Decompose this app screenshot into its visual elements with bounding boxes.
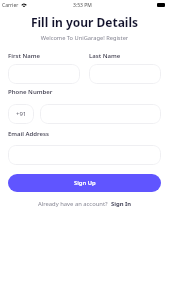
staticText: First Name: [8, 52, 41, 60]
staticText: Last Name: [89, 52, 121, 60]
button[interactable]: Sign In: [111, 200, 132, 208]
button[interactable]: [89, 64, 161, 84]
other: Wi-Fi signal: [21, 2, 27, 7]
staticText: Phone Number: [8, 88, 53, 96]
staticText: Welcome To UniGarage! Register: [0, 34, 169, 42]
staticText: Sign In: [111, 200, 132, 208]
staticText: Already have an account?: [38, 200, 108, 208]
staticText: Carrier: [2, 2, 19, 9]
button[interactable]: [40, 104, 161, 124]
staticText: Sign Up: [74, 179, 96, 187]
staticText: Fill in your Details: [0, 14, 169, 30]
button[interactable]: +91: [8, 104, 34, 124]
staticText: 3:53 PM: [73, 2, 92, 9]
button[interactable]: Sign Up: [8, 174, 161, 192]
button[interactable]: [8, 64, 80, 84]
staticText: +91: [16, 110, 27, 118]
button[interactable]: [8, 145, 161, 165]
staticText: Email Address: [8, 130, 50, 138]
other: Battery: [157, 3, 165, 7]
